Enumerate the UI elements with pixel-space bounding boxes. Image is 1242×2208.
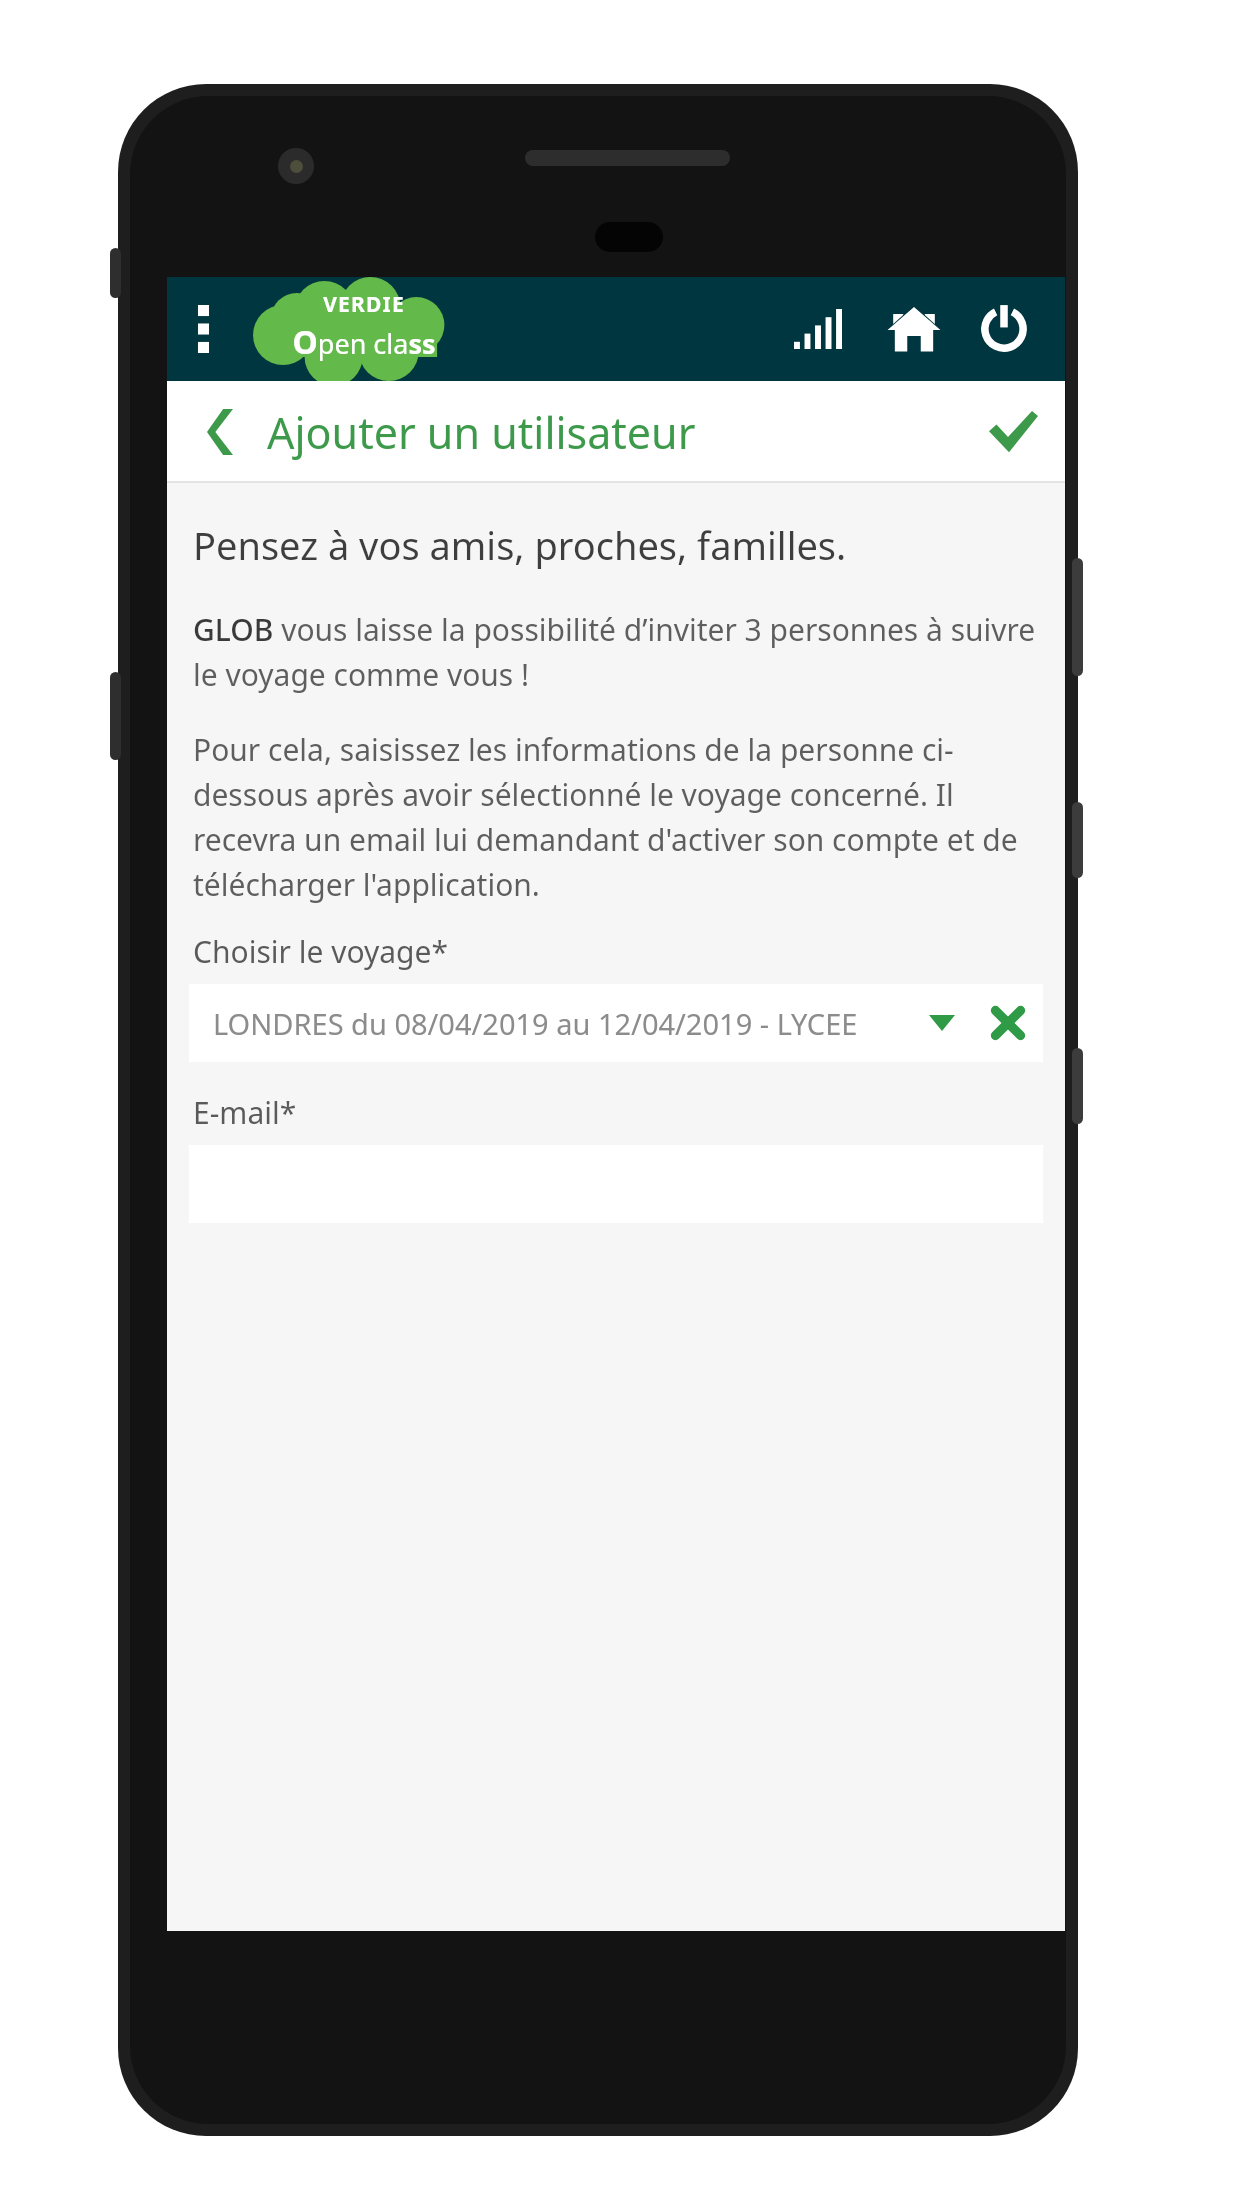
staticText: Open class: [292, 320, 436, 364]
button[interactable]: Valider: [961, 381, 1065, 483]
button[interactable]: Signal: [775, 277, 861, 381]
button[interactable]: Back: [189, 381, 251, 483]
staticText: E-mail*: [193, 1092, 297, 1133]
button[interactable]: LONDRES du 08/04/2019 au 12/04/2019 - LY…: [189, 984, 1043, 1062]
staticText: Ajouter un utilisateur: [267, 403, 696, 462]
button[interactable]: Verdie Open Class: [237, 279, 467, 379]
staticText: LONDRES du 08/04/2019 au 12/04/2019 - LY…: [213, 1004, 858, 1043]
button[interactable]: Ouvrir la liste: [915, 984, 969, 1062]
staticText: Pensez à vos amis, proches, familles.: [193, 519, 847, 571]
button[interactable]: Effacer: [977, 984, 1039, 1062]
staticText: GLOB vous laisse la possibilité d’invite…: [193, 609, 1043, 695]
staticText: Choisir le voyage*: [193, 931, 448, 972]
button[interactable]: Power off: [963, 277, 1045, 381]
button[interactable]: Home: [875, 277, 953, 381]
staticText: Pour cela, saisissez les informations de…: [193, 729, 1051, 905]
button[interactable]: Menu: [181, 277, 225, 381]
staticText: VERDIE: [323, 290, 405, 319]
